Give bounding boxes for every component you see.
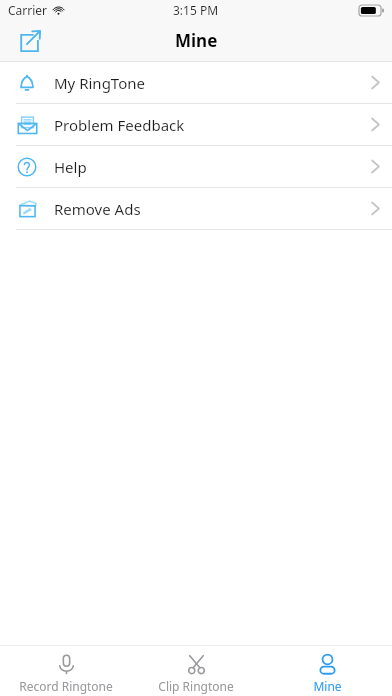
- staticText: Problem Feedback: [54, 115, 185, 135]
- staticText: Record Ringtone: [19, 678, 113, 694]
- staticText: Carrier: [8, 2, 48, 18]
- staticText: My RingTone: [54, 73, 145, 93]
- button[interactable]: Help: [0, 146, 392, 187]
- button[interactable]: Remove Ads: [0, 188, 392, 229]
- button[interactable]: Mine: [262, 649, 392, 694]
- staticText: Mine: [313, 678, 342, 694]
- staticText: Clip Ringtone: [158, 678, 234, 694]
- staticText: Remove Ads: [54, 199, 141, 219]
- staticText: 3:15 PM: [173, 2, 219, 18]
- button[interactable]: Problem Feedback: [0, 104, 392, 145]
- staticText: Help: [54, 157, 87, 177]
- button[interactable]: Record Ringtone: [1, 649, 131, 694]
- staticText: Mine: [175, 29, 218, 52]
- button[interactable]: Clip Ringtone: [131, 649, 261, 694]
- button[interactable]: My RingTone: [0, 62, 392, 103]
- button[interactable]: Share: [10, 21, 50, 61]
